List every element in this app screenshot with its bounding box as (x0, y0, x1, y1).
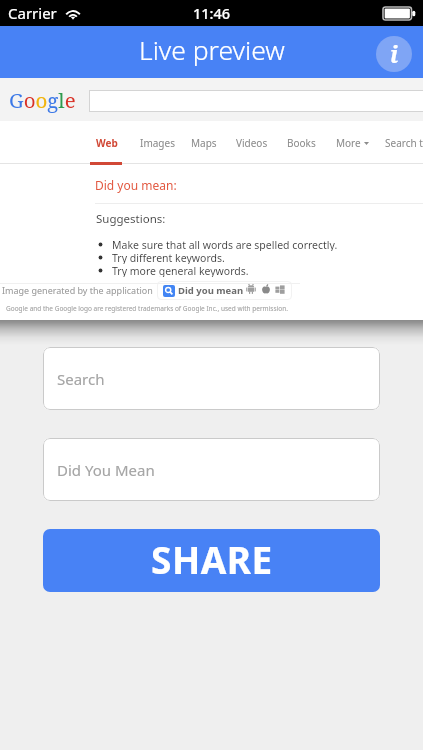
staticText: Books (287, 136, 316, 150)
button[interactable]: Books (287, 136, 316, 150)
staticText: 11:46 (193, 3, 231, 23)
staticText: More (336, 136, 361, 150)
staticText: i (390, 38, 399, 69)
staticText: Image generated by the application (2, 284, 153, 296)
button[interactable]: More (336, 136, 369, 150)
button[interactable]: SHARE (43, 529, 380, 592)
button[interactable]: Search to (385, 136, 423, 150)
staticText: Make sure that all words are spelled cor… (112, 238, 338, 251)
button[interactable]: Videos (236, 136, 268, 150)
staticText: Live preview (139, 32, 285, 68)
staticText: Google and the Google logo are registere… (6, 304, 288, 313)
staticText: Maps (191, 136, 217, 150)
staticText: SHARE (151, 534, 273, 584)
staticText: Videos (236, 136, 268, 150)
button[interactable]: Images (140, 136, 175, 150)
button[interactable]: Maps (191, 136, 217, 150)
button[interactable]: Web (96, 136, 118, 150)
staticText: Images (140, 136, 175, 150)
staticText: Did you mean (178, 284, 244, 297)
staticText: Did you mean: (95, 177, 177, 193)
staticText: Google (9, 86, 76, 114)
button[interactable]: Search (43, 347, 380, 410)
staticText: Try more general keywords. (112, 264, 249, 277)
staticText: Did You Mean (57, 460, 155, 480)
staticText: Suggestions: (96, 211, 166, 227)
staticText: Carrier (8, 3, 57, 23)
staticText: Search to (385, 136, 423, 150)
button[interactable]: Info (376, 36, 412, 72)
staticText: Web (96, 136, 118, 150)
staticText: Search (57, 369, 105, 389)
staticText: Try different keywords. (112, 251, 225, 264)
button[interactable]: Did You Mean (43, 438, 380, 501)
